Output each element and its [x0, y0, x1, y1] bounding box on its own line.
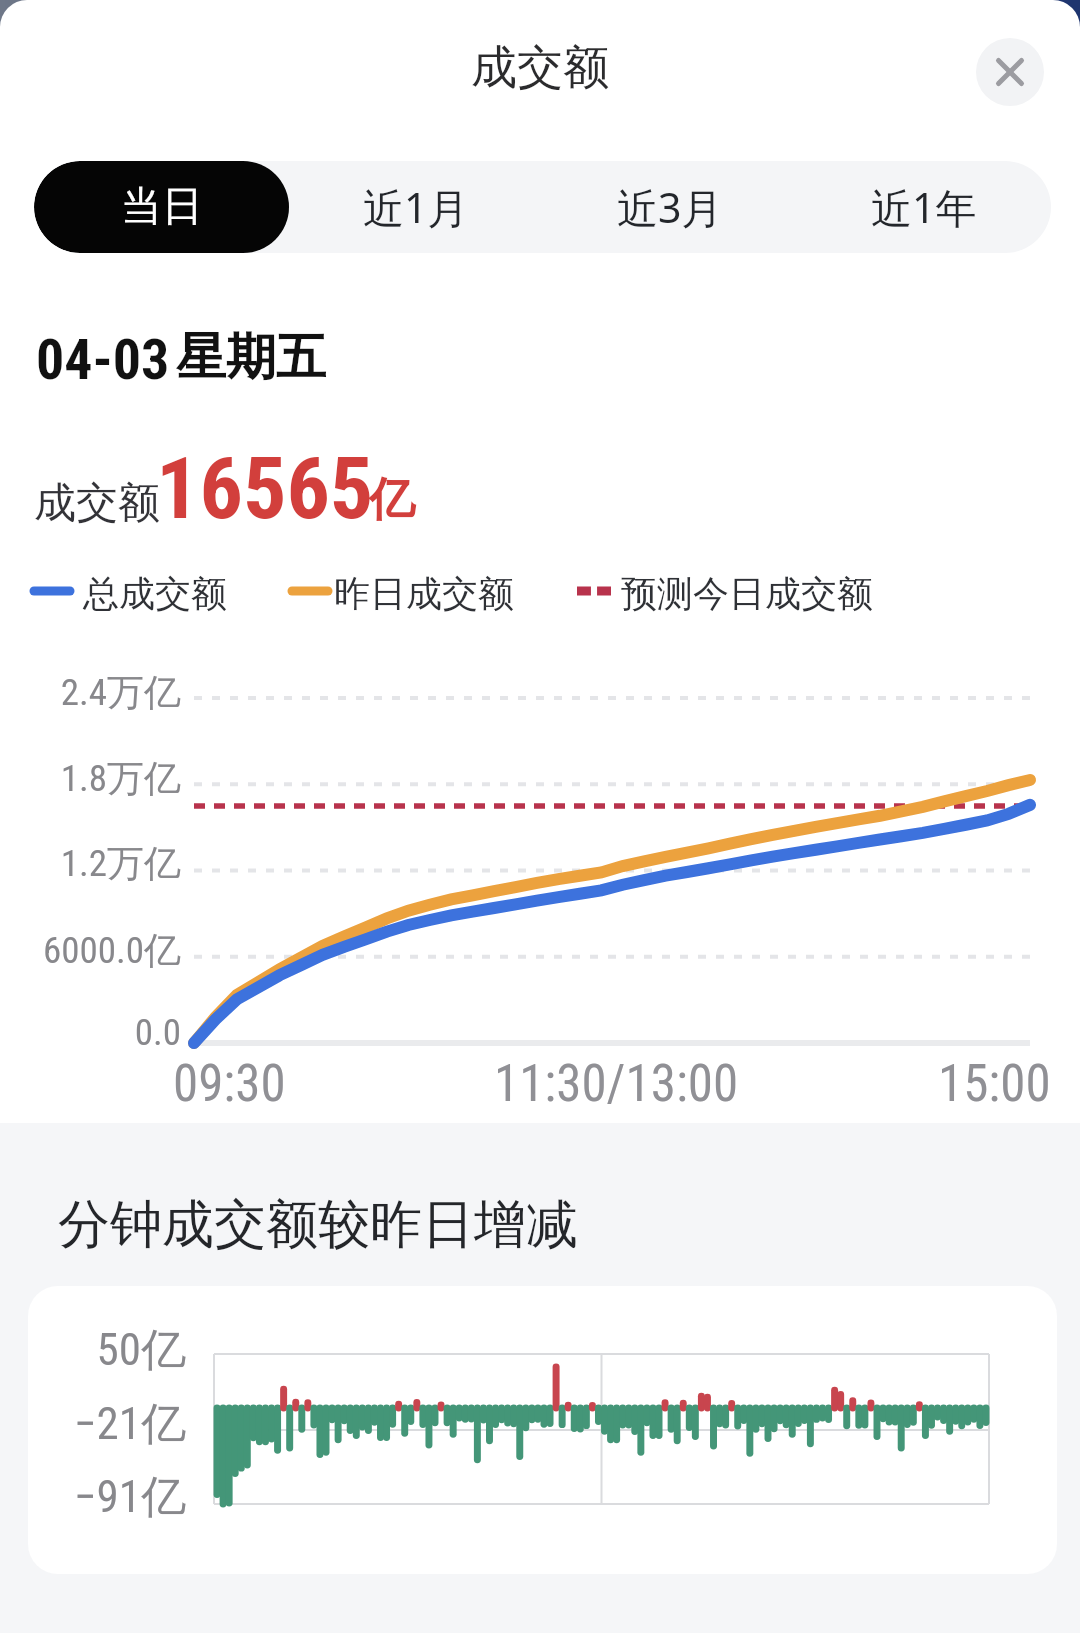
staticText: 总成交额 — [83, 571, 227, 616]
staticText: 分钟成交额较昨日增减 — [58, 1192, 578, 1258]
staticText: 1.2万亿 — [0, 840, 181, 887]
staticText: 近1月 — [363, 179, 469, 235]
staticText: 当日 — [121, 181, 203, 233]
staticText: 1.8万亿 — [0, 755, 181, 802]
staticText: 亿 — [369, 471, 415, 529]
button[interactable]: 当日 — [34, 161, 289, 253]
staticText: 成交额 — [34, 477, 160, 530]
button[interactable]: 近3月 — [543, 161, 797, 253]
button[interactable]: Close — [976, 38, 1044, 106]
staticText: 04-03 — [36, 327, 170, 393]
button[interactable]: 近1年 — [797, 161, 1051, 253]
staticText: 09:30 — [173, 1054, 286, 1114]
staticText: 成交额 — [0, 39, 1080, 97]
staticText: 昨日成交额 — [334, 571, 514, 616]
staticText: 预测今日成交额 — [621, 571, 873, 616]
staticText: 6000.0亿 — [0, 927, 181, 974]
staticText: 50亿 — [28, 1322, 186, 1379]
staticText: 16565 — [156, 438, 374, 539]
staticText: 15:00 — [938, 1054, 1051, 1114]
staticText: 近3月 — [617, 179, 723, 235]
staticText: 0.0 — [0, 1011, 181, 1054]
staticText: 2.4万亿 — [0, 669, 181, 716]
staticText: −21亿 — [28, 1396, 186, 1453]
staticText: 11:30/13:00 — [494, 1054, 739, 1114]
staticText: 近1年 — [871, 179, 977, 235]
staticText: 星期五 — [176, 326, 326, 389]
button[interactable]: 近1月 — [289, 161, 543, 253]
staticText: −91亿 — [28, 1469, 186, 1526]
